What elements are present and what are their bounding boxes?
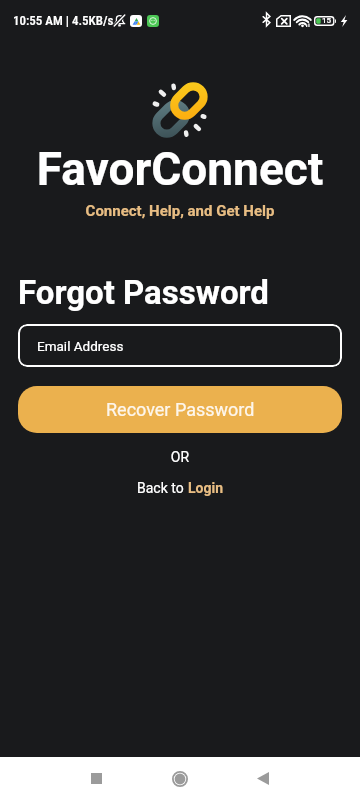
staticText: Recover Password <box>106 399 255 420</box>
staticText: Connect, Help, and Get Help <box>0 202 360 220</box>
staticText: Login <box>188 480 224 496</box>
staticText: Email Address <box>37 338 124 354</box>
staticText: 10:55 AM | 4.5KB/s <box>13 13 114 28</box>
button[interactable]: Login <box>188 480 224 496</box>
button[interactable]: Back <box>234 762 291 795</box>
staticText: FavorConnect <box>0 142 360 196</box>
button[interactable]: Recent apps <box>68 762 125 795</box>
staticText: OR <box>0 449 360 465</box>
staticText: Back to <box>137 480 188 496</box>
button[interactable]: Recover Password <box>18 386 342 433</box>
staticText: Forgot Password <box>18 273 269 312</box>
button[interactable]: Home <box>151 762 208 795</box>
button[interactable]: Email Address <box>18 324 342 367</box>
staticText: 15 <box>322 16 332 25</box>
